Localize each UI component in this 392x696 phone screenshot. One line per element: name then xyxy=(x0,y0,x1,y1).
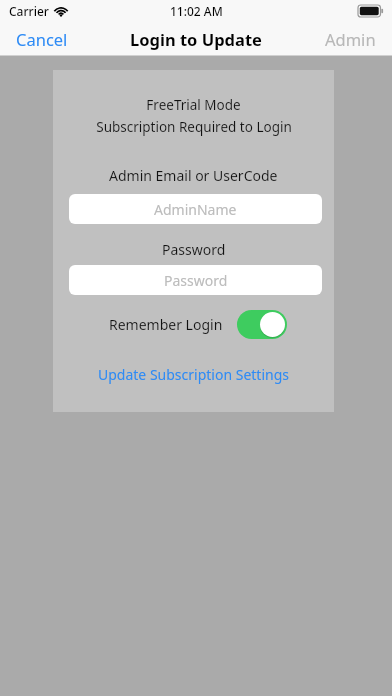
staticText: Remember Login xyxy=(109,315,223,334)
staticText: AdminName xyxy=(154,200,237,219)
button[interactable]: Password xyxy=(69,265,322,295)
staticText: FreeTrial Mode xyxy=(146,96,241,114)
staticText: Password xyxy=(164,271,228,290)
button[interactable]: Admin xyxy=(309,22,392,56)
staticText: 11:02 AM xyxy=(170,3,223,19)
staticText: Password xyxy=(162,240,226,259)
staticText: Update Subscription Settings xyxy=(98,365,289,384)
staticText: Subscription Required to Login xyxy=(96,118,292,136)
staticText: Login to Update xyxy=(130,28,262,50)
button[interactable]: AdminName xyxy=(69,194,322,224)
staticText: Cancel xyxy=(16,28,68,50)
staticText: Admin Email or UserCode xyxy=(109,166,278,185)
button[interactable]: Cancel xyxy=(0,22,84,56)
staticText: Carrier xyxy=(9,3,49,19)
button[interactable]: Update Subscription Settings xyxy=(92,362,295,387)
staticText: Admin xyxy=(325,28,376,50)
button[interactable]: Remember Login toggle xyxy=(237,310,287,339)
